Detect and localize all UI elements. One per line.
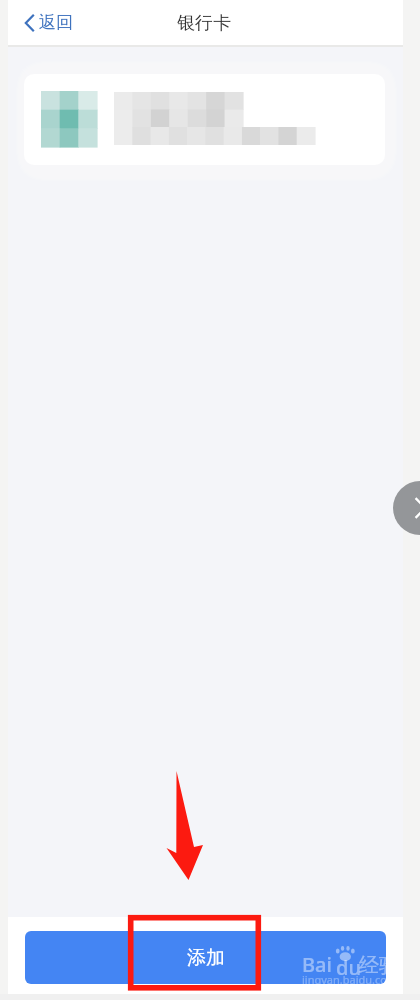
button[interactable]: 添加 — [25, 931, 386, 984]
staticText: 经验 — [359, 953, 399, 978]
staticText: Bai — [302, 951, 332, 978]
staticText: jingyan.baidu.com — [302, 972, 398, 987]
staticText: du — [336, 954, 361, 978]
button[interactable]: 返回 — [25, 0, 73, 45]
staticText: 银行卡 — [177, 12, 231, 35]
staticText: 返回 — [39, 12, 73, 33]
button[interactable]: Expand panel — [393, 481, 420, 535]
staticText: 添加 — [187, 946, 225, 970]
button[interactable] — [24, 74, 385, 165]
